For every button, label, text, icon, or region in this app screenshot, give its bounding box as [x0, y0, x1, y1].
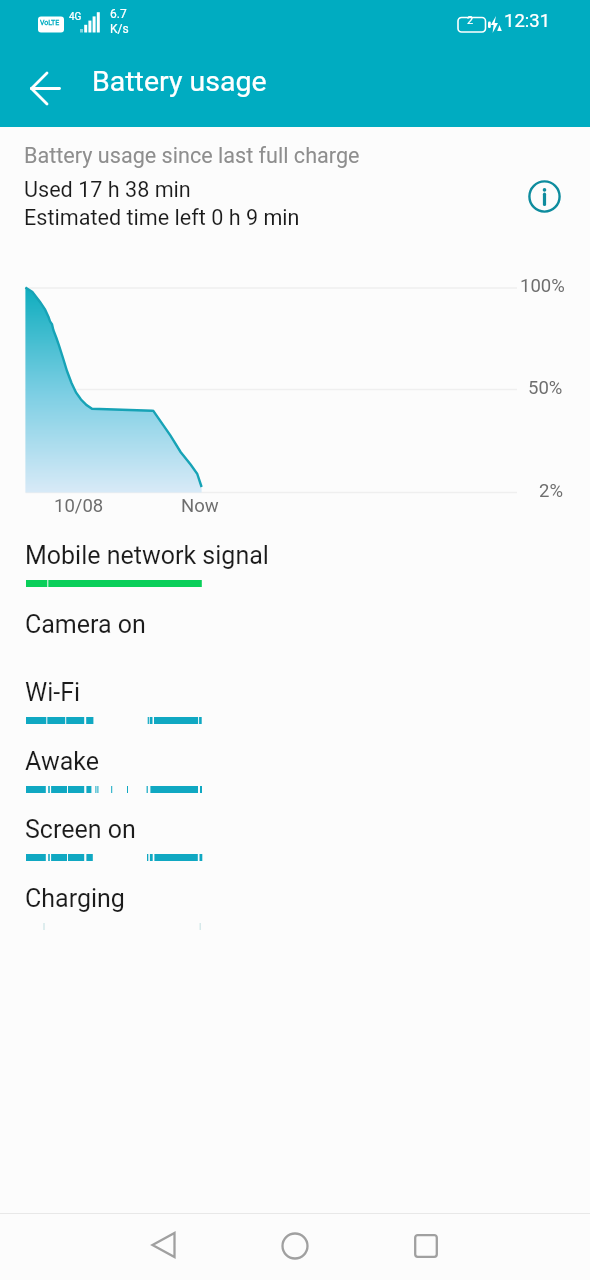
staticText: 100%: [520, 275, 565, 297]
button[interactable]: Back: [0, 1213, 230, 1280]
staticText: Awake: [25, 747, 99, 776]
button[interactable]: Info: [520, 172, 568, 220]
staticText: Charging: [25, 884, 125, 913]
staticText: 2: [467, 14, 474, 27]
staticText: Battery usage: [92, 65, 267, 98]
button[interactable]: Charging: [0, 882, 590, 944]
button[interactable]: Recent apps: [360, 1213, 590, 1280]
staticText: 6.7: [110, 7, 127, 21]
staticText: 50%: [528, 377, 563, 399]
staticText: Wi-Fi: [25, 678, 81, 707]
button[interactable]: Screen on: [0, 813, 590, 875]
staticText: Battery usage since last full charge: [24, 143, 360, 168]
staticText: 10/08: [54, 495, 104, 517]
staticText: Now: [181, 495, 219, 517]
button[interactable]: Wi-Fi: [0, 676, 590, 738]
staticText: Screen on: [25, 815, 136, 844]
staticText: 12:31: [504, 10, 551, 32]
staticText: Used 17 h 38 min: [24, 177, 191, 202]
staticText: Mobile network signal: [25, 541, 269, 570]
staticText: 2%: [539, 480, 563, 502]
button[interactable]: Camera on: [0, 608, 590, 670]
staticText: VoLTE: [40, 19, 60, 27]
staticText: 4G: [69, 11, 82, 23]
button[interactable]: Home: [230, 1213, 360, 1280]
button[interactable]: Awake: [0, 745, 590, 807]
staticText: K/s: [110, 22, 129, 36]
button[interactable]: Back: [17, 60, 74, 117]
button[interactable]: Mobile network signal: [0, 539, 590, 601]
staticText: Estimated time left 0 h 9 min: [24, 205, 300, 230]
staticText: Camera on: [25, 610, 146, 639]
